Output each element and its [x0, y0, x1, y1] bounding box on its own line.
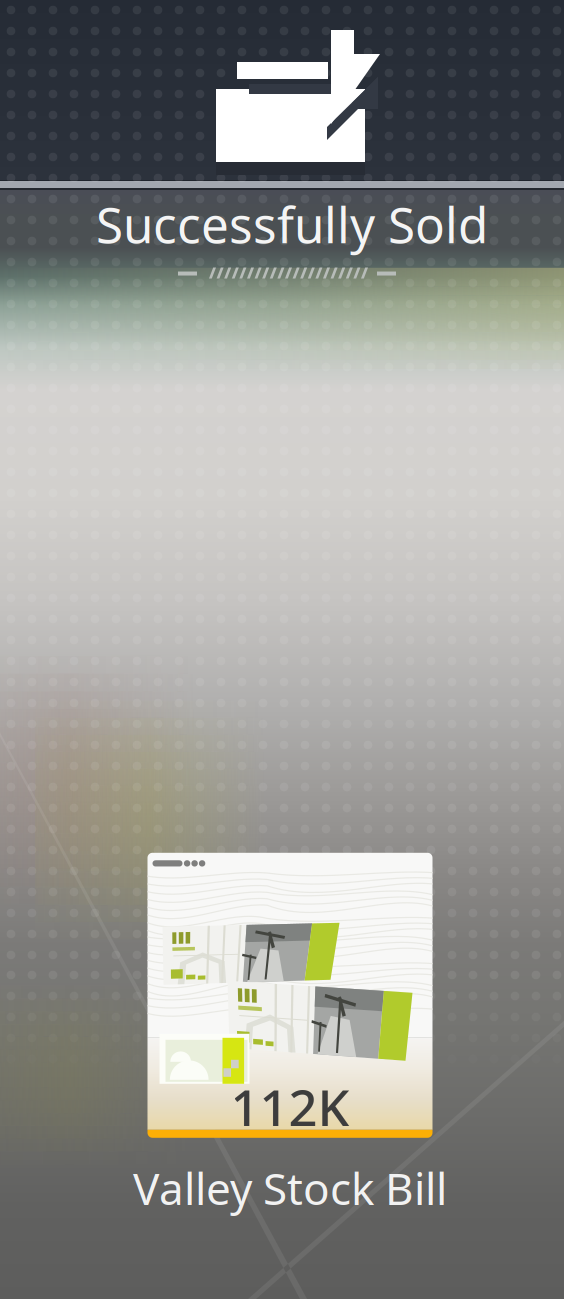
- staticText: 112K: [230, 1073, 349, 1140]
- staticText: Valley Stock Bill: [133, 1159, 447, 1217]
- staticText: Successfully Sold: [96, 191, 488, 257]
- button[interactable]: 112K: [125, 853, 455, 1217]
